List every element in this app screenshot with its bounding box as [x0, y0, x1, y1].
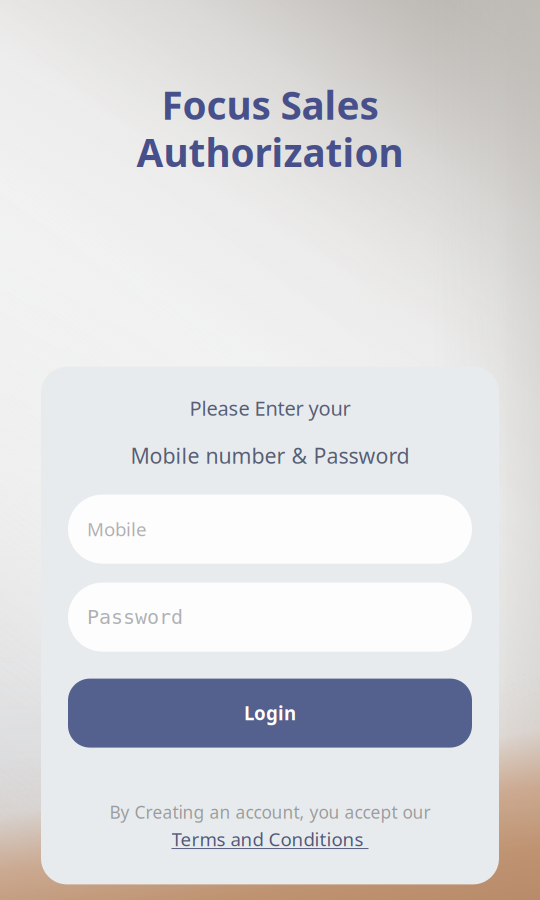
staticText: Please Enter your [189, 395, 350, 421]
staticText: Terms and Conditions [171, 827, 368, 851]
button[interactable]: Terms and Conditions [171, 827, 368, 851]
button[interactable]: Mobile [68, 495, 472, 564]
staticText: Authorization [136, 126, 403, 178]
staticText: Password [87, 606, 183, 628]
staticText: Focus Sales [161, 79, 378, 130]
staticText: Login [244, 701, 296, 725]
staticText: Mobile number & Password [130, 441, 409, 470]
staticText: Mobile [87, 517, 147, 541]
button[interactable]: Password [68, 583, 472, 652]
button[interactable]: Login [68, 679, 472, 748]
staticText: By Creating an account, you accept our [109, 801, 430, 824]
